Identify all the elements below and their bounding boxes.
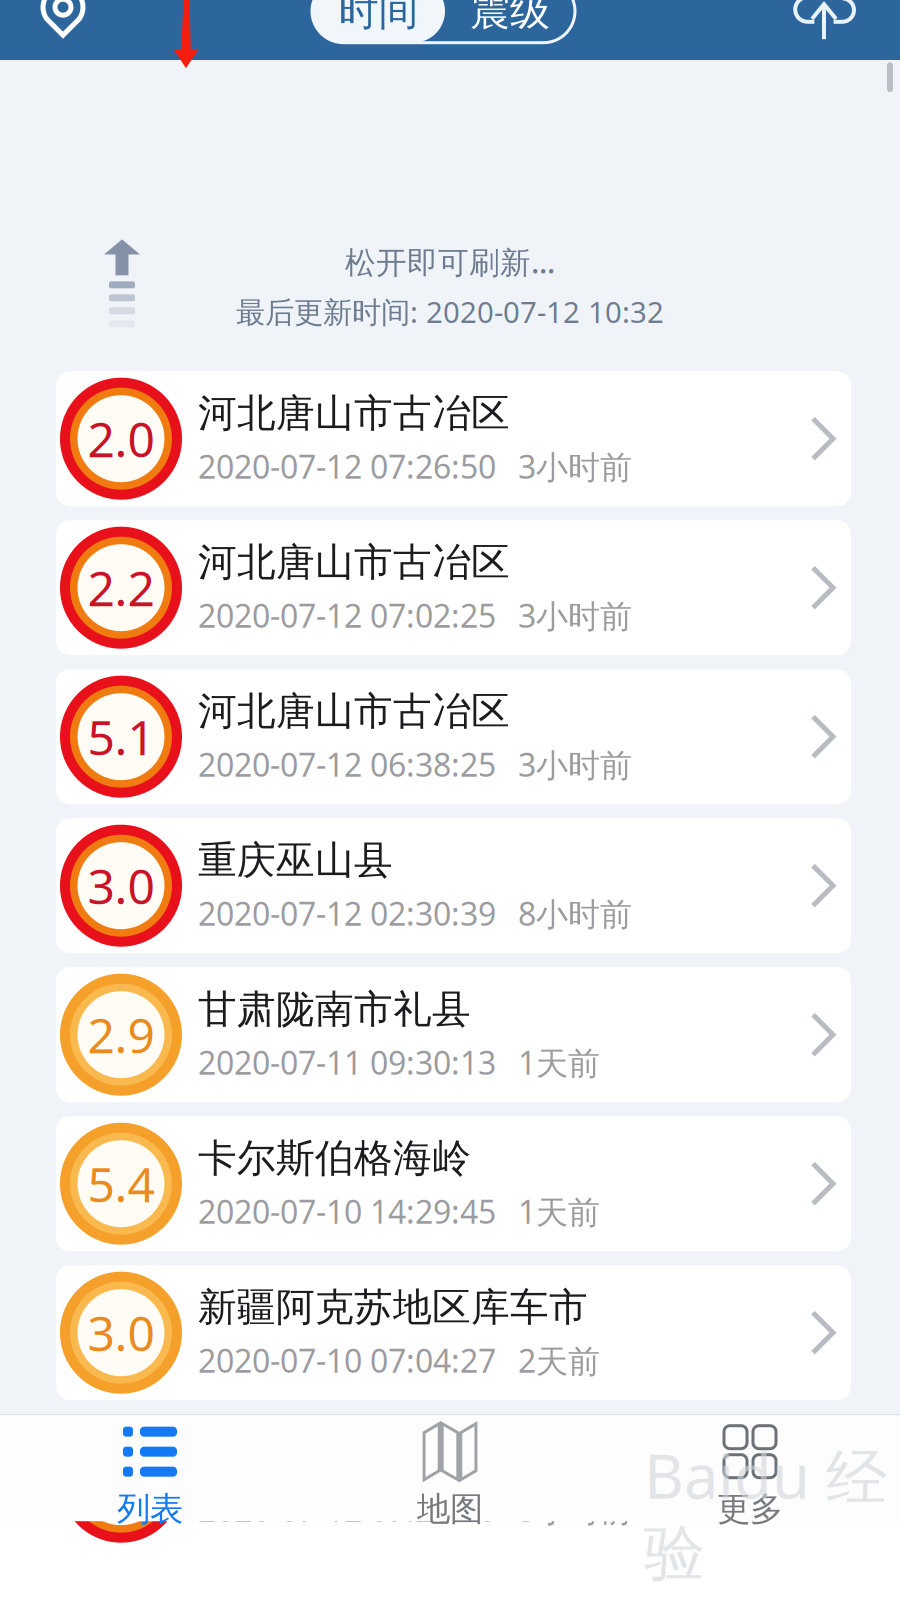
staticText: 河北唐山市古冶区 [198,1433,510,1480]
button[interactable]: 5.4 [56,1116,851,1251]
staticText: 河北唐山市古冶区 [198,688,510,735]
button[interactable]: 时间 [312,0,445,43]
staticText: 重庆巫山县 [198,837,393,884]
staticText: 最后更新时间: 2020-07-12 10:32 [236,292,664,331]
staticText: 列表 [117,1489,183,1530]
staticText: 2020-07-11 09:30:13 [198,1041,496,1084]
staticText: 3小时前 [518,445,632,488]
staticText: 3.0 [87,854,154,917]
staticText: 2020-07-12 07:26:50 [198,1488,496,1531]
staticText: 5.4 [87,1152,154,1215]
staticText: 松开即可刷新... [345,241,555,282]
staticText: 2.0 [87,407,154,470]
staticText: 2.9 [87,1003,154,1066]
button[interactable]: 2.2 [56,520,851,655]
button[interactable]: 列表 [0,1406,300,1530]
staticText: 河北唐山市古冶区 [198,539,510,586]
staticText: 5.1 [87,705,154,768]
button[interactable]: 5.1 [56,669,851,804]
staticText: 3小时前 [518,743,632,786]
staticText: 2020-07-12 06:38:25 [198,743,496,786]
staticText: 2天前 [518,1339,600,1382]
button[interactable]: 2.0 [56,371,851,506]
staticText: 2020-07-10 07:04:27 [198,1339,496,1382]
staticText: 时间 [338,0,418,36]
staticText: 更多 [717,1489,783,1530]
button[interactable]: 地图 [300,1406,600,1530]
staticText: 2020-07-12 07:26:50 [198,445,496,488]
button[interactable]: 3.0 [56,818,851,953]
staticText: 3小时前 [518,1488,632,1531]
staticText: 2020-07-12 02:30:39 [198,892,496,935]
staticText: 3小时前 [518,594,632,637]
button[interactable]: Location [20,0,106,54]
staticText: 2.2 [87,556,154,619]
staticText: 甘肃陇南市礼县 [198,986,471,1033]
staticText: 3.0 [87,1301,154,1364]
button[interactable]: 更多 [600,1406,900,1530]
button[interactable]: 3.0 [56,1265,851,1400]
button[interactable]: 2.9 [56,967,851,1102]
staticText: 2.0 [87,1450,154,1513]
staticText: 2020-07-10 14:29:45 [198,1190,496,1233]
staticText: 1天前 [518,1190,600,1233]
staticText: 卡尔斯伯格海岭 [198,1135,471,1182]
staticText: 新疆阿克苏地区库车市 [198,1284,588,1331]
staticText: 地图 [417,1489,483,1530]
button[interactable]: 震级 [445,0,575,43]
staticText: 2020-07-12 07:02:25 [198,594,496,637]
staticText: 8小时前 [518,892,632,935]
staticText: 震级 [470,0,550,36]
staticText: 1天前 [518,1041,600,1084]
button[interactable]: Upload [781,0,867,54]
staticText: Baidu 经验 [644,1434,887,1591]
staticText: 河北唐山市古冶区 [198,390,510,437]
button[interactable]: 2.0 [56,1414,851,1549]
